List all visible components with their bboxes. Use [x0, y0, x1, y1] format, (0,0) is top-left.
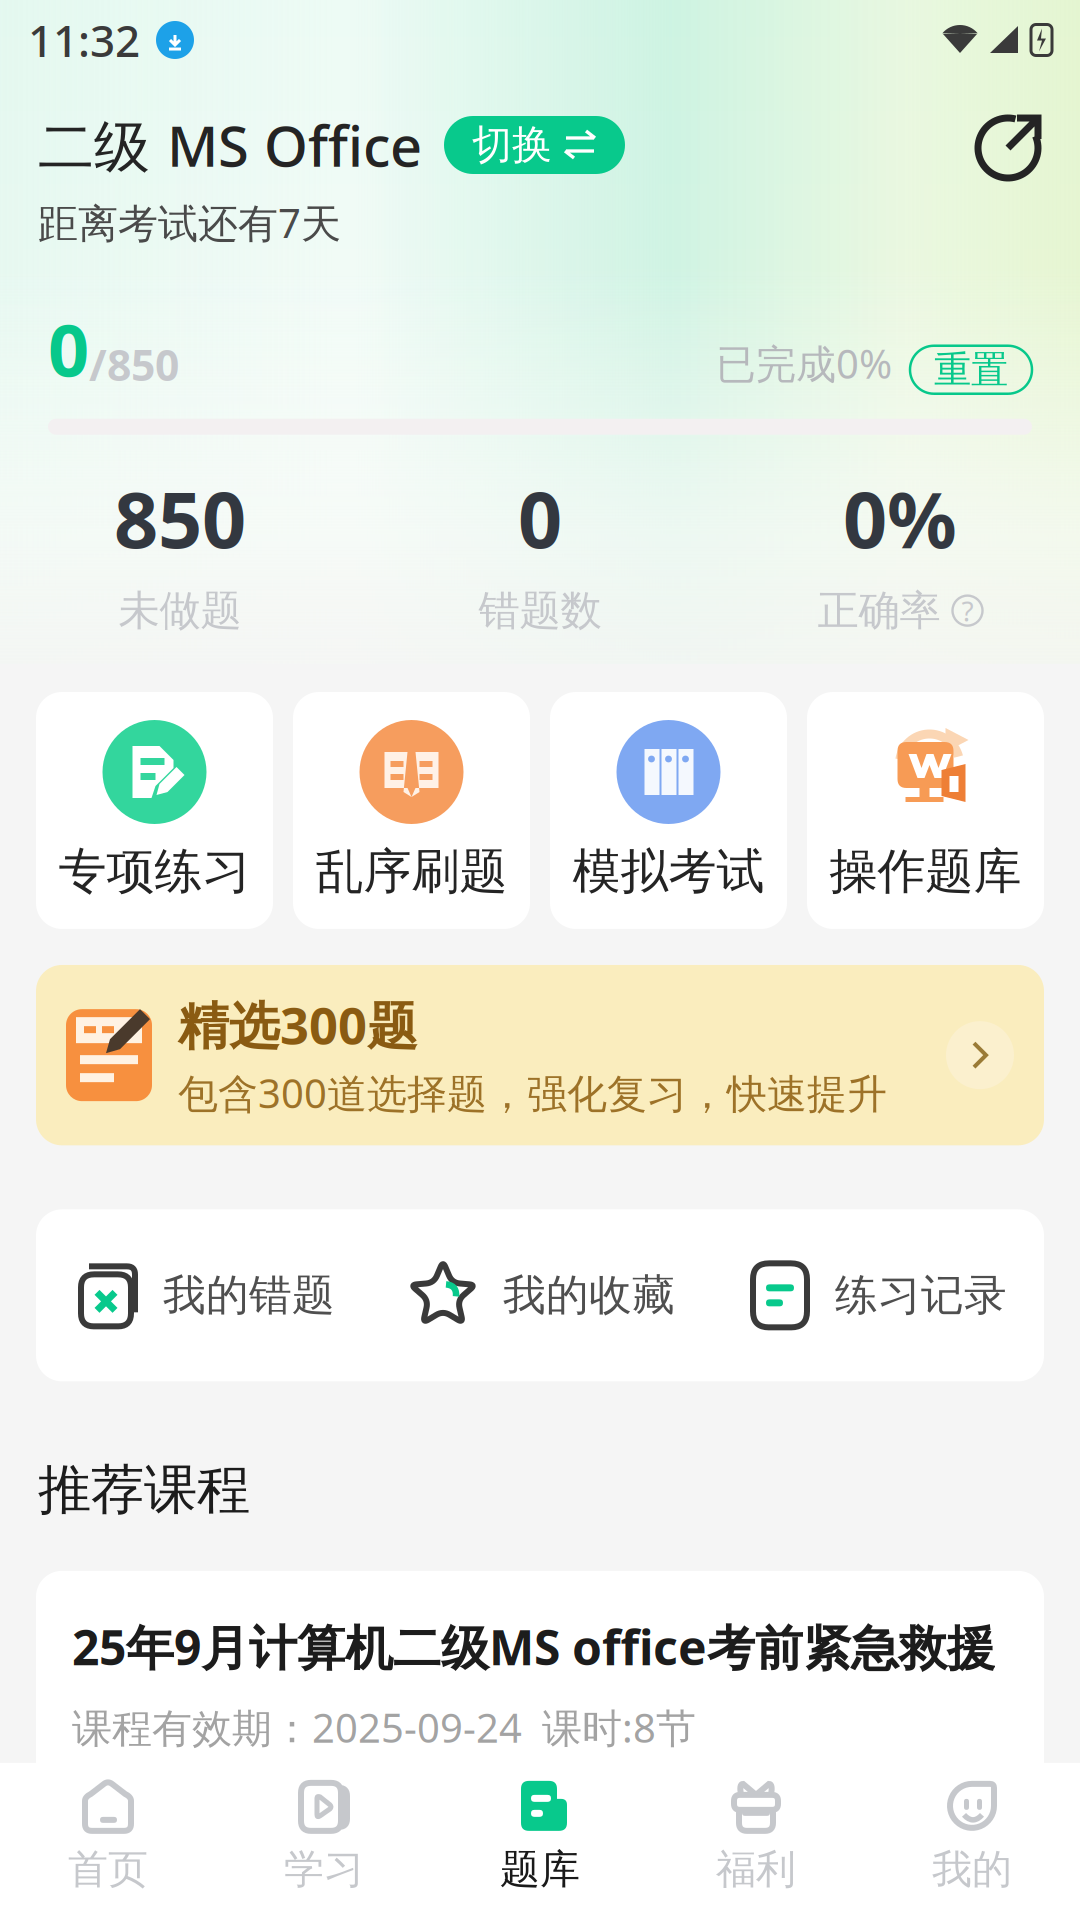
- button[interactable]: 切换: [444, 116, 625, 174]
- staticText: 我的错题: [163, 1269, 335, 1322]
- staticText: 操作题库: [829, 842, 1021, 901]
- staticText: 乱序刷题: [315, 842, 507, 901]
- button[interactable]: 首页: [0, 1763, 216, 1920]
- staticText: 我的: [932, 1845, 1012, 1894]
- button[interactable]: 乱序刷题: [293, 692, 530, 929]
- staticText: ?: [961, 592, 973, 629]
- staticText: 练习记录: [835, 1269, 1007, 1322]
- staticText: 错题数: [478, 585, 601, 636]
- button[interactable]: Share: [972, 106, 1046, 184]
- button[interactable]: 练习记录: [708, 1255, 1044, 1335]
- staticText: 距离考试还有7天: [38, 196, 341, 249]
- staticText: 重置: [934, 347, 1008, 393]
- button[interactable]: 题库: [432, 1763, 648, 1920]
- button[interactable]: 我的错题: [36, 1256, 372, 1334]
- staticText: 学习: [284, 1845, 364, 1894]
- staticText: 切换: [472, 120, 552, 169]
- staticText: 课程有效期：2025-09-24 课时:8节: [72, 1701, 696, 1754]
- button[interactable]: 福利: [648, 1763, 864, 1920]
- button[interactable]: 我的: [864, 1763, 1080, 1920]
- staticText: 专项练习: [58, 842, 250, 901]
- staticText: 11:32: [28, 11, 140, 69]
- button[interactable]: 学习: [216, 1763, 432, 1920]
- staticText: 包含300道选择题，强化复习，快速提升: [178, 1066, 887, 1119]
- staticText: 福利: [716, 1845, 796, 1894]
- staticText: 模拟考试: [572, 842, 764, 901]
- staticText: 正确率: [817, 585, 940, 636]
- staticText: 题库: [500, 1845, 580, 1894]
- staticText: /850: [89, 336, 179, 393]
- staticText: 首页: [68, 1845, 148, 1894]
- button[interactable]: 精选300题: [36, 965, 1044, 1145]
- button[interactable]: 操作题库: [807, 692, 1044, 929]
- staticText: 未做题: [118, 585, 241, 636]
- staticText: 我的收藏: [503, 1269, 675, 1322]
- button[interactable]: 我的收藏: [372, 1255, 708, 1335]
- button[interactable]: 专项练习: [36, 692, 273, 929]
- staticText: 25年9月计算机二级MS office考前紧急救援: [72, 1615, 995, 1679]
- staticText: 已完成0%: [716, 337, 892, 390]
- staticText: 精选300题: [178, 991, 418, 1058]
- staticText: 二级 MS Office: [38, 108, 422, 182]
- button[interactable]: 模拟考试: [550, 692, 787, 929]
- staticText: 0%: [843, 466, 957, 569]
- staticText: 0: [48, 301, 89, 397]
- staticText: 0: [518, 466, 562, 569]
- staticText: 推荐课程: [38, 1457, 250, 1523]
- staticText: 850: [114, 466, 246, 569]
- button[interactable]: 重置: [910, 346, 1032, 394]
